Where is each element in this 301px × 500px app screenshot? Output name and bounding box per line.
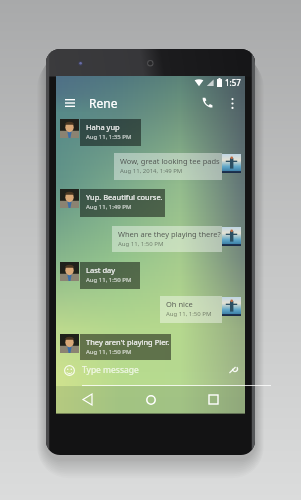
button[interactable]: Haha yup <box>80 119 141 146</box>
button[interactable]: Last day <box>80 262 140 289</box>
staticText: Aug 11, 1:50 PM <box>118 240 164 248</box>
button[interactable]: Call <box>194 89 221 116</box>
button[interactable]: Recents <box>182 386 245 413</box>
button[interactable]: Emoji <box>61 362 77 378</box>
button[interactable]: Oh nice <box>160 296 222 323</box>
staticText: Oh nice <box>166 299 193 309</box>
staticText: Aug 11, 1:50 PM <box>86 348 132 356</box>
button[interactable]: When are they playing there? <box>112 226 222 252</box>
button[interactable]: They aren't playing Pier. <box>80 334 171 360</box>
staticText: Aug 11, 1:50 PM <box>86 276 132 284</box>
button[interactable]: Yup. Beautiful course. <box>80 189 165 217</box>
button[interactable]: Back <box>56 386 119 413</box>
staticText: Aug 11, 2014, 1:49 PM <box>120 167 183 175</box>
staticText: Wow, great looking tee pads <box>120 156 220 166</box>
button[interactable]: Wow, great looking tee pads <box>114 153 222 180</box>
button[interactable]: Home <box>119 386 182 413</box>
staticText: 1:57 <box>225 77 241 88</box>
staticText: They aren't playing Pier. <box>86 337 170 347</box>
staticText: Aug 11, 1:35 PM <box>86 133 132 141</box>
staticText: Aug 11, 1:50 PM <box>166 310 212 318</box>
button[interactable]: More options <box>221 92 243 114</box>
staticText: Rene <box>89 95 118 111</box>
staticText: Last day <box>86 265 116 275</box>
button[interactable]: Navigation drawer <box>56 89 83 116</box>
button[interactable]: Attach <box>224 362 240 378</box>
staticText: Type message <box>82 364 139 376</box>
staticText: Yup. Beautiful course. <box>86 192 163 202</box>
staticText: When are they playing there? <box>118 229 221 239</box>
staticText: Aug 11, 1:49 PM <box>86 203 132 211</box>
staticText: Haha yup <box>86 122 120 132</box>
